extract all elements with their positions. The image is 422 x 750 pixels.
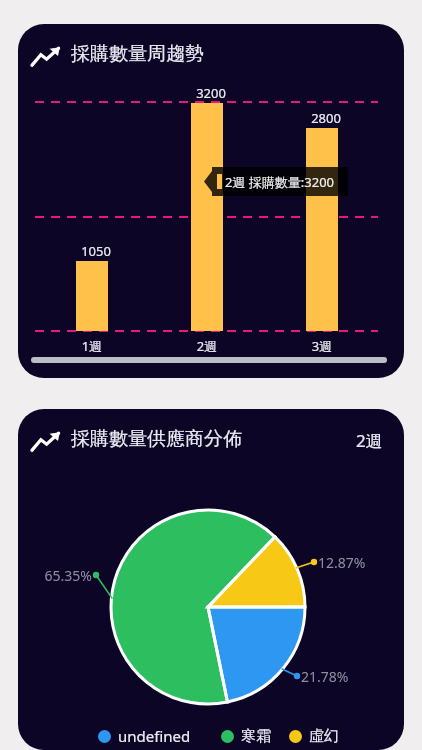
staticText: 1週: [76, 337, 108, 355]
staticText: 65.35%: [32, 566, 92, 585]
staticText: 3週: [306, 337, 338, 355]
other: Trend: [31, 46, 61, 68]
button[interactable]: 寒霜: [221, 727, 271, 746]
staticText: 12.87%: [318, 553, 366, 572]
staticText: 寒霜: [241, 727, 271, 746]
staticText: 1050: [79, 242, 113, 260]
staticText: 2週: [356, 429, 383, 452]
staticText: 3200: [194, 84, 228, 102]
other: Trend: [31, 431, 61, 453]
button[interactable]: undefined: [98, 726, 191, 746]
staticText: undefined: [118, 726, 191, 746]
staticText: 2週 採購數量:3200: [225, 173, 335, 191]
button[interactable]: 虛幻: [289, 727, 339, 746]
staticText: 虛幻: [309, 727, 339, 746]
staticText: 2週: [191, 337, 223, 355]
staticText: 21.78%: [301, 667, 349, 686]
button[interactable]: Trend: [18, 24, 404, 378]
staticText: 採購數量周趨勢: [71, 42, 204, 66]
button[interactable]: Trend: [18, 409, 404, 750]
staticText: 採購數量供應商分佈: [71, 427, 242, 451]
staticText: 2800: [309, 109, 343, 127]
